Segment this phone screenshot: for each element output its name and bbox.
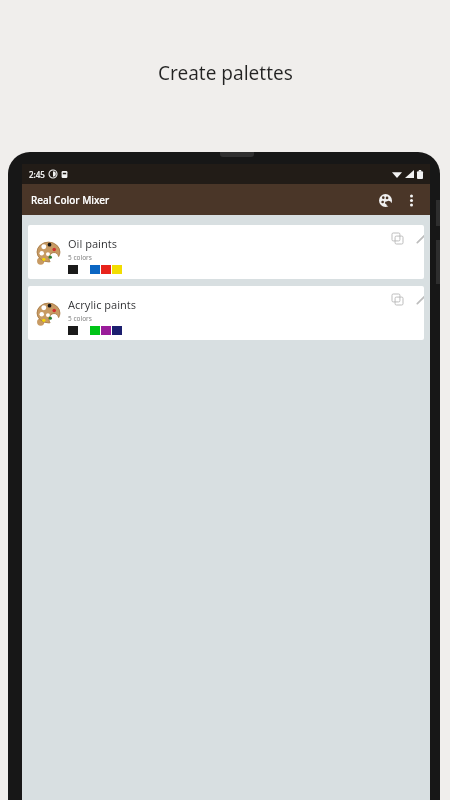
button[interactable]: Edit palette bbox=[410, 227, 424, 249]
staticText: 5 colors bbox=[68, 314, 92, 323]
staticText: 2:45 bbox=[29, 169, 45, 180]
staticText: Real Color Mixer bbox=[31, 193, 110, 207]
staticText: Acrylic paints bbox=[68, 297, 137, 312]
staticText: Create palettes bbox=[158, 60, 293, 86]
button[interactable]: More options bbox=[398, 187, 424, 213]
button[interactable]: Duplicate palette bbox=[386, 227, 408, 249]
button[interactable]: Oil paints bbox=[28, 225, 424, 279]
staticText: 5 colors bbox=[68, 253, 92, 262]
button[interactable]: Duplicate palette bbox=[386, 288, 408, 310]
staticText: Oil paints bbox=[68, 236, 117, 251]
button[interactable]: Edit palette bbox=[410, 288, 424, 310]
button[interactable]: Acrylic paints bbox=[28, 286, 424, 340]
button[interactable]: Color palette bbox=[372, 187, 398, 213]
